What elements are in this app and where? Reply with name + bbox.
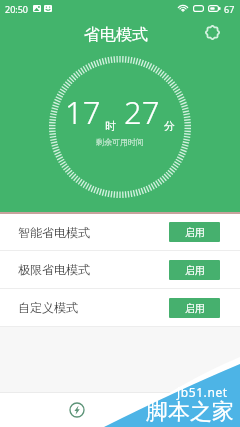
staticText: 20:50 — [5, 3, 29, 15]
button[interactable]: 启用 — [169, 298, 220, 318]
staticText: 分 — [164, 119, 175, 133]
staticText: jb51.net — [177, 384, 228, 400]
staticText: 极限省电模式 — [18, 262, 90, 277]
button[interactable]: 自定义模式 — [0, 289, 240, 326]
staticText: 启用 — [185, 264, 205, 277]
staticText: 省电模式 — [84, 25, 148, 45]
button[interactable]: 极限省电模式 — [0, 251, 240, 288]
button[interactable]: 启用 — [169, 222, 220, 242]
staticText: 剩余可用时间 — [96, 137, 144, 147]
button[interactable]: 智能省电模式 — [0, 214, 240, 250]
staticText: 27 — [124, 91, 160, 133]
staticText: 17 — [65, 91, 101, 133]
button[interactable]: 启用 — [169, 260, 220, 280]
staticText: 67 — [224, 3, 235, 15]
staticText: 脚本之家 — [146, 398, 234, 426]
staticText: 启用 — [185, 226, 205, 239]
button[interactable]: Settings — [199, 19, 225, 45]
staticText: 自定义模式 — [18, 300, 78, 315]
staticText: 智能省电模式 — [18, 225, 90, 240]
staticText: 时 — [105, 119, 116, 133]
staticText: 启用 — [185, 302, 205, 315]
button[interactable]: Power saving — [63, 396, 91, 424]
